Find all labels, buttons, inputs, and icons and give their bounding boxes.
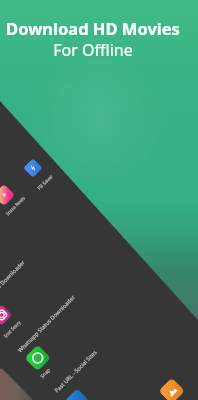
staticText: Whatsapp Status Downloader xyxy=(16,293,77,354)
staticText: Inst Story xyxy=(2,319,23,340)
staticText: Past URL - Social Sites xyxy=(53,348,99,394)
staticText: Download HD Movies xyxy=(6,17,180,39)
button[interactable]: Saved photo xyxy=(0,367,34,400)
button[interactable]: Insta Reels xyxy=(0,184,15,206)
staticText: FB Saver xyxy=(36,173,55,192)
button[interactable]: Snap xyxy=(24,345,51,371)
button[interactable]: Gallery xyxy=(158,378,185,400)
staticText: Snap xyxy=(39,367,52,380)
button[interactable]: Downloader xyxy=(64,388,90,400)
staticText: Video Downloader xyxy=(0,258,27,299)
staticText: Insta Reels xyxy=(4,195,27,217)
button[interactable]: FB Saver xyxy=(23,158,43,178)
button[interactable]: Inst Story xyxy=(0,304,12,326)
staticText: For Offline xyxy=(53,39,133,61)
